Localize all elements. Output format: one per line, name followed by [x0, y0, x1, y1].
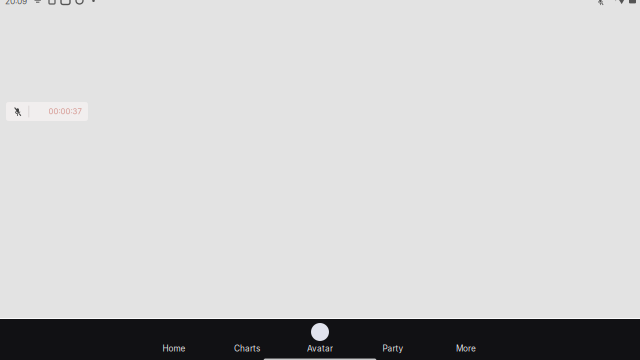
staticText: 00:00:37 [48, 107, 81, 116]
button[interactable]: More [433, 319, 499, 360]
staticText: Party [382, 343, 403, 353]
button[interactable]: Home [141, 319, 207, 360]
button[interactable]: 00:00:37 [6, 102, 88, 121]
button[interactable]: Party [360, 319, 426, 360]
staticText: More [456, 343, 476, 353]
button[interactable]: Charts [214, 319, 280, 360]
staticText: Home [162, 343, 185, 353]
staticText: Avatar [307, 343, 333, 353]
staticText: 20:09 [5, 0, 27, 6]
button[interactable]: Avatar [287, 319, 353, 360]
staticText: Charts [234, 343, 260, 353]
